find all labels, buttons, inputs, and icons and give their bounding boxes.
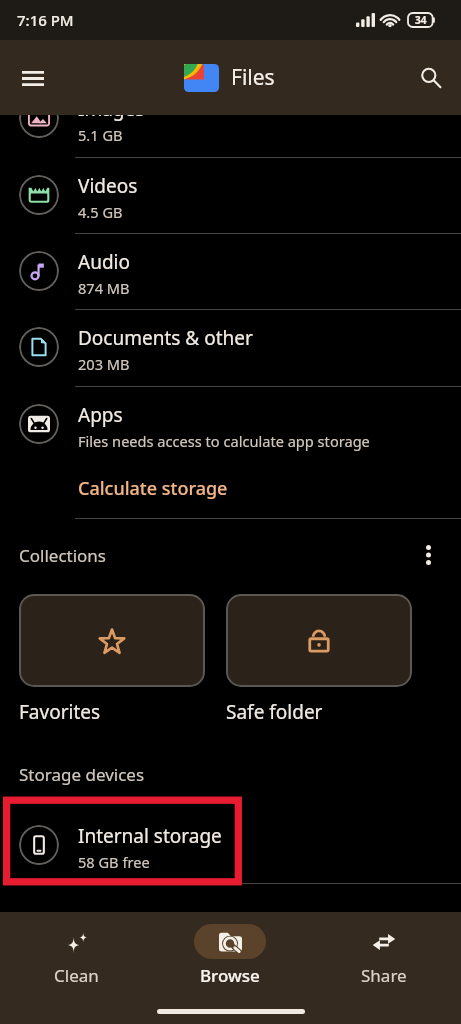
button[interactable]: Clean xyxy=(0,924,153,987)
button[interactable]: More options xyxy=(408,535,448,575)
staticText: Videos xyxy=(78,173,138,199)
button[interactable] xyxy=(19,594,205,687)
staticText: Storage devices xyxy=(19,763,145,786)
button[interactable]: Open navigation menu xyxy=(9,54,57,102)
staticText: Files xyxy=(231,63,275,92)
staticText: Share xyxy=(361,964,407,987)
staticText: 7:16 PM xyxy=(17,10,74,30)
staticText: Calculate storage xyxy=(78,476,228,501)
staticText: Audio xyxy=(78,249,130,275)
staticText: 5.1 GB xyxy=(78,125,123,145)
staticText: 874 MB xyxy=(78,278,130,298)
button[interactable]: Documents & other xyxy=(0,309,461,385)
button[interactable]: Internal storage xyxy=(0,807,461,883)
staticText: Safe folder xyxy=(226,699,323,725)
button[interactable]: Search xyxy=(407,54,455,102)
staticText: Browse xyxy=(200,964,260,987)
staticText: Internal storage xyxy=(78,823,222,849)
button[interactable]: Browse xyxy=(153,924,307,987)
button[interactable]: Images xyxy=(0,80,461,156)
staticText: 203 MB xyxy=(78,354,130,374)
staticText: 58 GB free xyxy=(78,852,150,872)
staticText: Files needs access to calculate app stor… xyxy=(78,431,370,451)
button[interactable]: Share xyxy=(307,924,461,987)
staticText: 34 xyxy=(415,13,427,27)
button[interactable] xyxy=(226,594,412,687)
staticText: Images xyxy=(78,96,145,122)
button[interactable]: Audio xyxy=(0,233,461,309)
button[interactable]: Calculate storage xyxy=(66,458,240,518)
button[interactable]: Videos xyxy=(0,157,461,233)
staticText: Favorites xyxy=(19,699,101,725)
staticText: Apps xyxy=(78,402,123,428)
staticText: Clean xyxy=(54,964,99,987)
staticText: 4.5 GB xyxy=(78,202,123,222)
staticText: Documents & other xyxy=(78,325,253,351)
staticText: Collections xyxy=(19,544,107,567)
button[interactable]: Apps xyxy=(0,386,461,462)
